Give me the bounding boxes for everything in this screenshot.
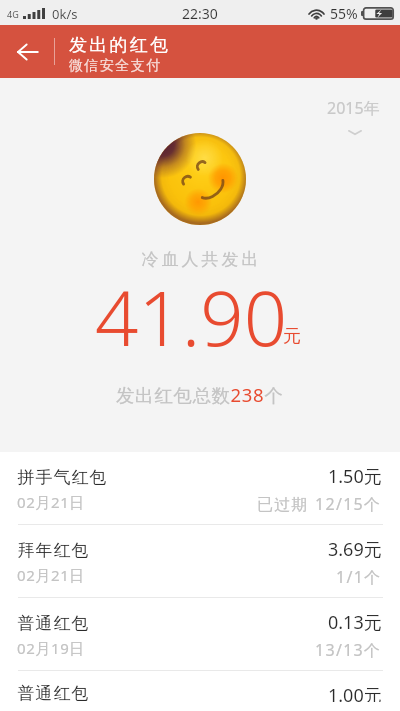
staticText: 3.69元	[328, 537, 382, 562]
staticText: 41.90	[95, 265, 288, 369]
staticText: 发出的红包	[68, 34, 169, 57]
staticText: 拼手气红包	[17, 467, 107, 488]
staticText: 1.00元	[328, 683, 382, 702]
button[interactable]: 拼手气红包	[0, 452, 400, 524]
button[interactable]: 普通红包	[0, 670, 400, 711]
staticText: 1.50元	[328, 464, 382, 489]
staticText: 02月21日	[17, 492, 85, 512]
staticText: 元	[283, 325, 301, 348]
staticText: 发出红包总数238个	[116, 382, 284, 407]
button[interactable]: Back	[0, 25, 54, 78]
staticText: 冷血人共发出	[140, 249, 260, 270]
staticText: 0k/s	[52, 5, 78, 23]
staticText: 已过期	[257, 493, 315, 515]
staticText: 0.13元	[328, 610, 382, 635]
button[interactable]: 拜年红包	[0, 524, 400, 597]
staticText: 4G	[7, 8, 19, 20]
staticText: 2015年	[327, 97, 380, 119]
staticText: 微信安全支付	[68, 57, 161, 75]
staticText: 22:30	[182, 4, 218, 23]
button[interactable]: 2015年	[327, 97, 380, 135]
staticText: 拜年红包	[17, 540, 89, 561]
staticText: 02月19日	[17, 638, 85, 658]
staticText: 普通红包	[17, 683, 89, 702]
staticText: 55%	[330, 4, 358, 23]
staticText: 普通红包	[17, 613, 89, 634]
staticText: 12/15个	[315, 493, 382, 515]
button[interactable]: 普通红包	[0, 597, 400, 670]
staticText: 13/13个	[315, 639, 382, 661]
staticText: 1/1个	[336, 566, 382, 588]
staticText: 02月21日	[17, 565, 85, 585]
